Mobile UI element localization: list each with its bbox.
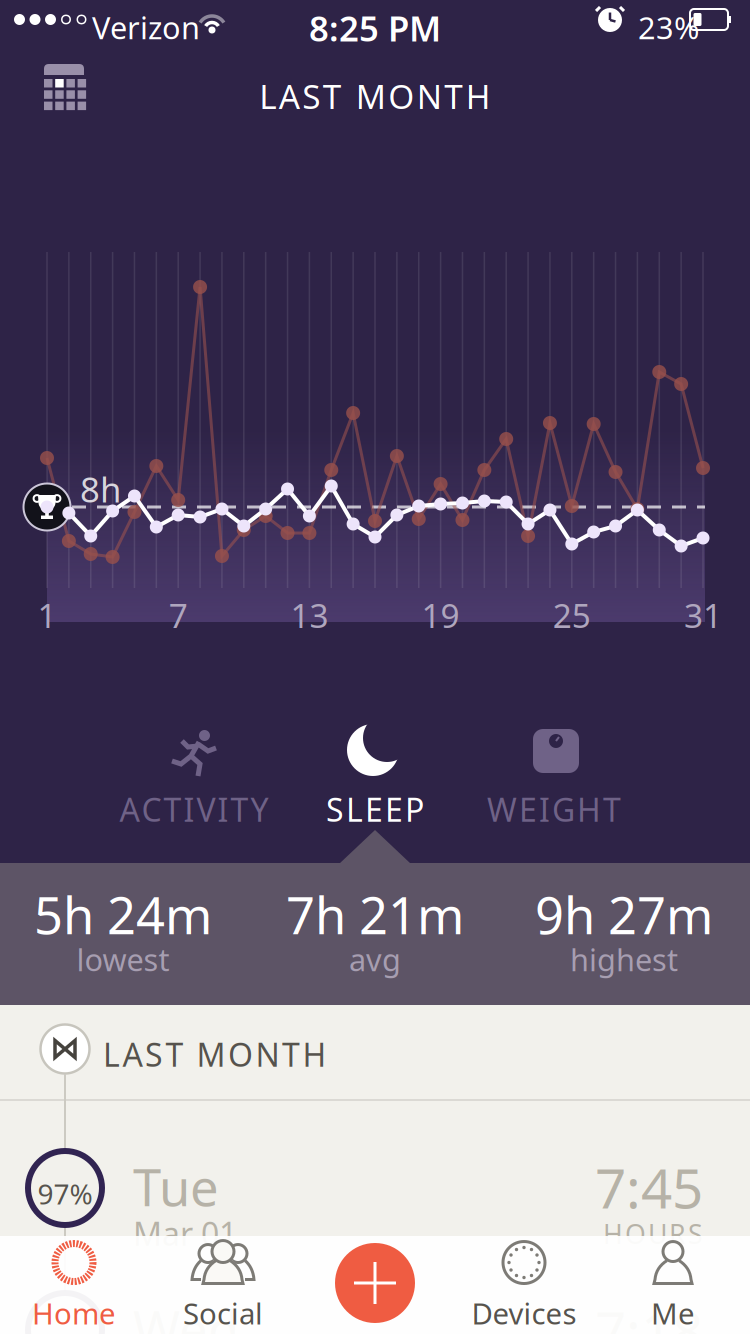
button[interactable]: Me	[608, 1240, 738, 1332]
staticText: WEIGHT	[487, 788, 621, 830]
staticText: 8h	[80, 466, 121, 512]
staticText: 31	[684, 593, 722, 637]
staticText: Wed	[133, 1295, 239, 1334]
button[interactable]: Home	[9, 1240, 139, 1332]
staticText: lowest	[76, 939, 169, 980]
staticText: avg	[349, 939, 401, 980]
staticText: 13	[290, 593, 328, 637]
staticText: 9h 27m	[535, 881, 713, 948]
staticText: 5h 24m	[34, 881, 212, 948]
staticText: 7:18	[595, 1294, 703, 1334]
button[interactable]: Activity	[94, 722, 294, 872]
staticText: 7h 21m	[286, 881, 464, 948]
button[interactable]: 97%	[0, 1148, 750, 1236]
staticText: 7:45	[595, 1151, 703, 1224]
staticText: 25	[553, 593, 591, 637]
staticText: Devices	[471, 1293, 576, 1332]
staticText: Mar 01	[133, 1212, 237, 1254]
button[interactable]: Sleep	[275, 722, 475, 872]
button[interactable]: Devices	[459, 1240, 589, 1332]
staticText: LAST MONTH	[259, 74, 491, 118]
staticText: 7	[169, 593, 188, 637]
staticText: ACTIVITY	[119, 788, 268, 830]
staticText: Verizon	[92, 7, 200, 48]
staticText: Home	[32, 1293, 116, 1332]
button[interactable]: Last month	[0, 1006, 750, 1098]
staticText: 8:25 PM	[309, 5, 441, 51]
staticText: 97%	[37, 1175, 92, 1212]
staticText: Social	[183, 1293, 263, 1332]
button[interactable]: Social	[158, 1240, 288, 1332]
button[interactable]: Calendar	[36, 56, 96, 116]
staticText: 19	[422, 593, 460, 637]
staticText: Me	[651, 1293, 695, 1332]
staticText: highest	[570, 939, 678, 980]
button[interactable]: Weight	[454, 722, 654, 872]
staticText: 1	[37, 593, 56, 637]
staticText: LAST MONTH	[103, 1033, 326, 1075]
button[interactable]: Log	[335, 1243, 415, 1323]
staticText: 23%	[638, 7, 699, 48]
staticText: HOURS	[603, 1216, 703, 1251]
staticText: SLEEP	[326, 788, 424, 830]
staticText: Tue	[133, 1153, 219, 1220]
